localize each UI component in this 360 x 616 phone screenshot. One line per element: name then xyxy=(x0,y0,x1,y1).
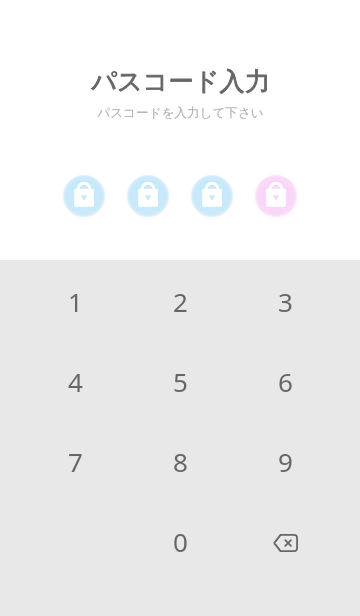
button[interactable]: 1 xyxy=(22,261,128,341)
button[interactable]: 0 xyxy=(128,501,233,581)
staticText: 6 xyxy=(278,364,293,399)
button[interactable]: 4 xyxy=(22,341,128,421)
staticText: 1 xyxy=(68,284,83,319)
button[interactable]: 6 xyxy=(233,341,338,421)
staticText: パスコード入力 xyxy=(91,66,270,98)
button[interactable]: 8 xyxy=(128,421,233,501)
button[interactable]: 2 xyxy=(128,261,233,341)
staticText: 5 xyxy=(173,364,188,399)
staticText: 9 xyxy=(278,444,293,479)
staticText: 3 xyxy=(278,284,293,319)
staticText: パスコードを入力して下さい xyxy=(97,105,264,121)
staticText: 8 xyxy=(173,444,188,479)
button[interactable]: Delete xyxy=(233,501,338,581)
staticText: 0 xyxy=(173,524,188,559)
staticText: 2 xyxy=(173,284,188,319)
button[interactable]: 7 xyxy=(22,421,128,501)
button[interactable]: 5 xyxy=(128,341,233,421)
staticText: パスコード入力 xyxy=(91,66,270,98)
staticText: 7 xyxy=(68,444,83,479)
staticText: 4 xyxy=(68,364,83,399)
button[interactable]: 3 xyxy=(233,261,338,341)
button[interactable]: 9 xyxy=(233,421,338,501)
